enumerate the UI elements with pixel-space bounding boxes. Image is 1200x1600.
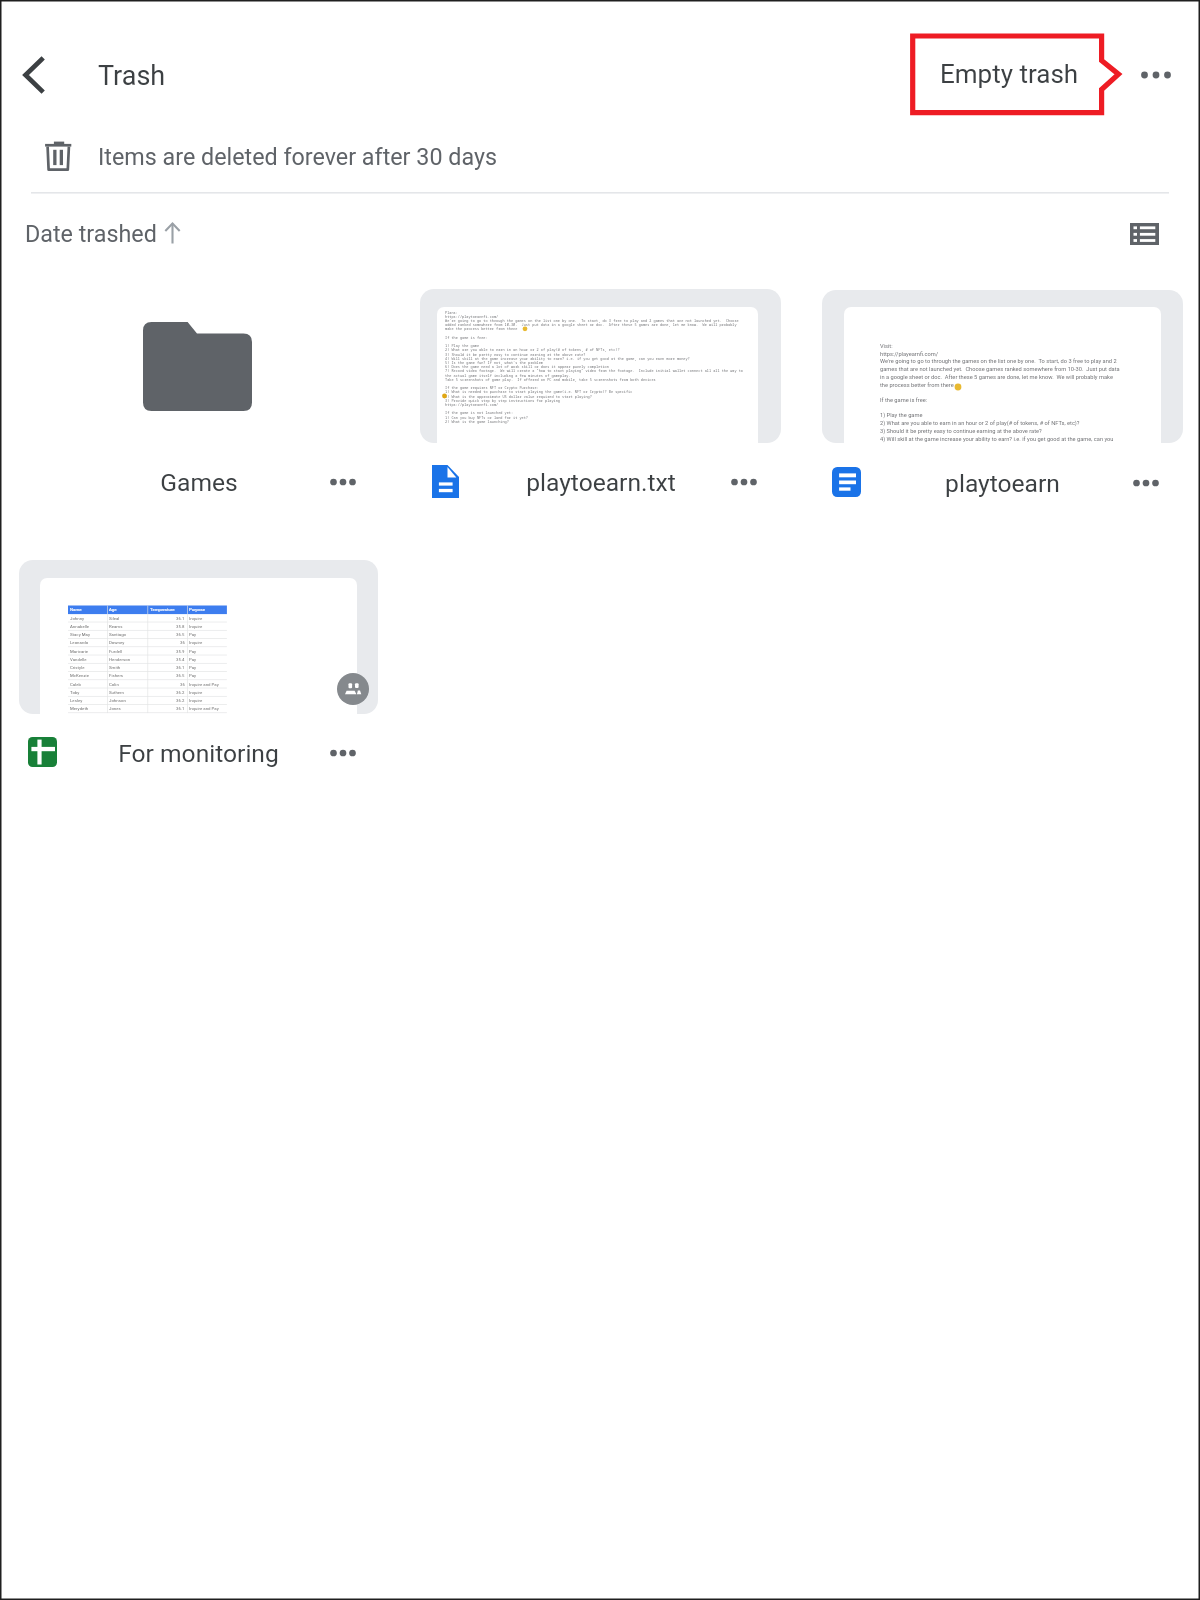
staticText: 2) What is the approximate US dollar val…	[445, 394, 592, 399]
button[interactable]: More options for playtoearn	[1118, 455, 1174, 511]
staticText: added ranked somewhere from 10-30. Just …	[445, 322, 737, 327]
staticText: 1) Play the game	[445, 343, 480, 348]
other: Shared	[337, 673, 369, 705]
staticText: 36.1	[176, 665, 185, 670]
staticText: Caleb	[70, 682, 81, 687]
staticText: Purpose	[189, 607, 206, 612]
staticText: Pay	[189, 632, 197, 637]
staticText: Empty trash	[940, 59, 1079, 89]
staticText: Games	[160, 468, 238, 497]
button[interactable]: More options for For monitoring	[315, 725, 371, 781]
staticText: Downey	[109, 640, 125, 645]
staticText: 36.5	[176, 632, 185, 637]
staticText: Stacy May	[70, 632, 90, 637]
staticText: Johnson	[109, 698, 126, 703]
staticText: 3) Should it be pretty easy to continue …	[880, 428, 1042, 435]
staticText: Inquire	[189, 690, 203, 695]
staticText: 1) Can you buy NFTs or land for it yet?	[445, 415, 528, 420]
staticText: games that are not launched yet. Choose …	[880, 366, 1120, 373]
staticText: the process better from there	[880, 382, 954, 389]
button[interactable]: Plans:	[420, 289, 781, 514]
staticText: 36.2	[176, 698, 185, 703]
staticText: Inquire and Pay	[189, 682, 219, 687]
staticText: Pay	[189, 673, 197, 678]
staticText: 35.8	[176, 624, 185, 629]
staticText: Pay	[189, 657, 197, 662]
staticText: Pay	[189, 649, 197, 654]
staticText: Inquire	[189, 640, 203, 645]
button[interactable]	[18, 212, 194, 258]
staticText: 4) Will skill at the game increase your …	[445, 356, 690, 361]
staticText: make the process better from there	[445, 326, 518, 331]
staticText: Age	[109, 607, 117, 612]
staticText: 36.1	[176, 706, 185, 711]
staticText: Reams	[109, 624, 123, 629]
staticText: Name	[70, 607, 82, 612]
staticText: Inquire	[189, 624, 203, 629]
staticText: Jones	[109, 706, 121, 711]
staticText: For monitoring	[118, 739, 279, 768]
button[interactable]	[912, 35, 1103, 114]
staticText: 2) What are you able to earn in an hour …	[880, 420, 1080, 427]
staticText: 2) What are you able to earn in an hour …	[445, 347, 620, 352]
staticText: Lesley	[70, 698, 83, 703]
staticText: https://playtoearnfi.com/	[445, 314, 499, 319]
button[interactable]: Back	[6, 47, 62, 103]
staticText: 3) Should it be pretty easy to continue …	[445, 352, 586, 357]
staticText: Johnny	[70, 616, 85, 621]
button[interactable]: Games	[19, 289, 378, 514]
staticText: Plans:	[445, 310, 458, 315]
staticText: Take 5 screenshots of game play. If offe…	[445, 377, 656, 382]
staticText: Fishers	[109, 673, 124, 678]
staticText: 36.2	[176, 690, 185, 695]
staticText: https://playtoearnfi.com/	[445, 402, 499, 407]
staticText: 35.4	[176, 657, 185, 662]
staticText: https://playearnfi.com/	[880, 351, 939, 358]
staticText: Items are deleted forever after 30 days	[98, 143, 497, 170]
button[interactable]: Name	[19, 560, 378, 785]
staticText: Merydeth	[70, 706, 89, 711]
staticText: Visit:	[880, 343, 893, 350]
staticText: Suthern	[109, 690, 124, 695]
staticText: Colin	[109, 682, 119, 687]
button[interactable]: More options for playtoearn.txt	[716, 454, 772, 510]
button[interactable]: More options for Games	[315, 454, 371, 510]
staticText: Henderson	[109, 657, 131, 662]
button[interactable]: Switch to list view	[1116, 206, 1172, 262]
button[interactable]: More options	[1128, 47, 1184, 103]
staticText: McKenzie	[70, 673, 89, 678]
staticText: Trash	[98, 60, 166, 92]
staticText: Annabelle	[70, 624, 90, 629]
staticText: If the game is free:	[445, 335, 488, 340]
staticText: We're going to go to through the games o…	[445, 318, 739, 323]
staticText: Vandelle	[70, 657, 87, 662]
staticText: Inquire	[189, 698, 203, 703]
staticText: 36.5	[176, 673, 185, 678]
staticText: 36.1	[176, 616, 185, 621]
staticText: 1) Play the game	[880, 412, 923, 419]
button[interactable]: Visit:	[822, 290, 1183, 515]
staticText: If the game is free:	[880, 397, 928, 404]
staticText: 36	[180, 640, 185, 645]
staticText: 5) Is the game fun? If not, what's the p…	[445, 360, 543, 365]
staticText: Cristyle	[70, 665, 85, 670]
staticText: playtoearn	[945, 469, 1060, 498]
staticText: If the game requires NFT or Crypto Purch…	[445, 385, 539, 390]
staticText: 35.9	[176, 649, 185, 654]
staticText: Maricarie	[70, 649, 89, 654]
staticText: 6) Does the game need a lot of work skil…	[445, 364, 609, 369]
button[interactable]	[0, 122, 1200, 192]
staticText: 2) What is the game launching?	[445, 419, 509, 424]
staticText: Santiago	[109, 632, 127, 637]
staticText: Inquire and Pay	[189, 706, 219, 711]
staticText: Leonardo	[70, 640, 89, 645]
staticText: Furdell	[109, 649, 123, 654]
staticText: 7) Record video footage. We will create …	[445, 368, 743, 373]
staticText: We're going to go to through the games o…	[880, 358, 1117, 365]
staticText: Toby	[70, 690, 80, 695]
staticText: the actual game itself including a few m…	[445, 373, 571, 378]
staticText: 36	[180, 682, 185, 687]
staticText: playtoearn.txt	[526, 468, 676, 497]
staticText: Temperature	[150, 607, 175, 612]
staticText: 4) Will skill at the game increase your …	[880, 436, 1114, 443]
